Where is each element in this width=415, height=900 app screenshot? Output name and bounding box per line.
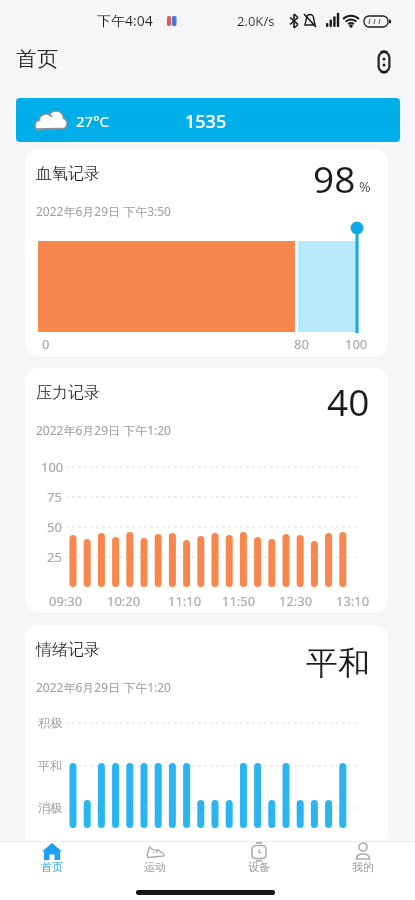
button[interactable]: 我的: [311, 842, 415, 874]
staticText: 运动: [144, 860, 166, 874]
button[interactable]: 27°C: [16, 98, 400, 142]
staticText: 下午4:04: [97, 11, 153, 30]
staticText: 平和: [306, 643, 370, 683]
button[interactable]: 情绪记录: [25, 625, 388, 860]
staticText: 首页: [16, 46, 58, 72]
staticText: 2022年6月29日 下午3:50: [36, 203, 171, 219]
staticText: %: [359, 177, 371, 196]
staticText: 80: [294, 335, 309, 353]
staticText: 11:10: [168, 592, 202, 610]
staticText: 10:20: [107, 592, 141, 610]
staticText: 情绪记录: [36, 640, 100, 660]
staticText: 我的: [352, 860, 374, 874]
staticText: 27°C: [76, 111, 110, 131]
staticText: 09:30: [49, 592, 83, 610]
staticText: 50: [47, 518, 62, 536]
button[interactable]: 运动: [103, 842, 207, 874]
staticText: 2022年6月29日 下午1:20: [36, 422, 171, 438]
staticText: 首页: [41, 860, 63, 874]
staticText: 消极: [38, 800, 62, 815]
staticText: 75: [47, 488, 62, 506]
staticText: 1535: [185, 109, 227, 134]
staticText: 平和: [38, 758, 62, 773]
staticText: 2.0K/s: [237, 12, 275, 30]
staticText: 100: [345, 335, 368, 353]
staticText: 25: [47, 548, 62, 566]
button[interactable]: 设备: [207, 842, 311, 874]
staticText: 2022年6月29日 下午1:20: [36, 679, 171, 695]
staticText: 100: [41, 458, 64, 476]
staticText: 13:10: [336, 592, 370, 610]
button[interactable]: 血氧记录: [25, 149, 388, 356]
staticText: 11:50: [222, 592, 256, 610]
staticText: 0: [42, 335, 50, 353]
button[interactable]: 压力记录: [25, 368, 388, 612]
staticText: 设备: [248, 860, 270, 874]
staticText: 12:30: [279, 592, 313, 610]
staticText: 98: [313, 153, 356, 203]
button[interactable]: 首页: [0, 842, 103, 874]
staticText: 积极: [38, 715, 62, 730]
button[interactable]: [376, 49, 392, 75]
staticText: 压力记录: [36, 383, 100, 403]
staticText: 血氧记录: [36, 164, 100, 184]
staticText: 40: [327, 376, 370, 426]
